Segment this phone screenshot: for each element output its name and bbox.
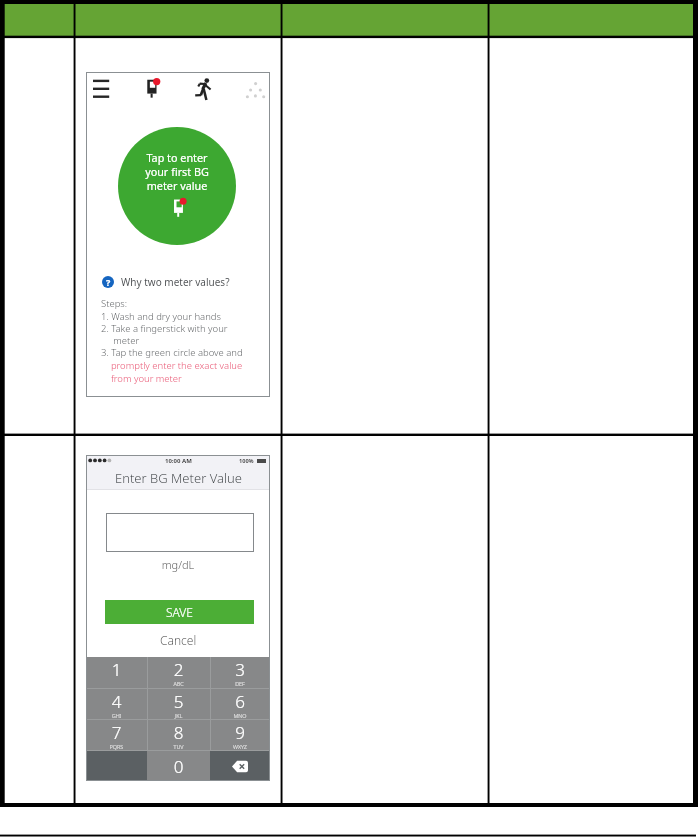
staticText: 0: [147, 755, 210, 778]
staticText: 100%: [239, 457, 254, 465]
staticText: SAVE: [166, 604, 193, 620]
button[interactable]: 3: [210, 657, 270, 688]
staticText: PQRS: [86, 743, 147, 750]
staticText: Steps: 1. Wash and dry your hands 2. Tak…: [101, 297, 243, 358]
button[interactable]: 6: [210, 689, 270, 719]
button[interactable]: 1: [86, 657, 147, 688]
button[interactable]: Activity: [191, 74, 219, 102]
button[interactable]: 0: [147, 751, 210, 781]
staticText: 5: [147, 690, 210, 713]
button[interactable]: 8: [147, 720, 210, 750]
staticText: 4: [86, 690, 147, 713]
button[interactable]: More: [239, 74, 267, 102]
staticText: Cancel: [160, 632, 197, 648]
staticText: mg/dL: [86, 557, 270, 572]
button[interactable]: 2: [147, 657, 210, 688]
button[interactable]: Cancel: [86, 632, 270, 648]
button[interactable]: 5: [147, 689, 210, 719]
staticText: WXYZ: [210, 743, 270, 750]
staticText: 3: [210, 658, 270, 681]
button[interactable]: Backspace: [210, 751, 270, 781]
staticText: DEF: [210, 680, 270, 687]
button[interactable]: Meter: [140, 74, 168, 102]
staticText: 10:00 AM: [165, 457, 192, 465]
staticText: 9: [210, 721, 270, 744]
button[interactable]: Menu: [89, 74, 117, 102]
button[interactable]: 4: [86, 689, 147, 719]
staticText: 7: [86, 721, 147, 744]
button[interactable]: SAVE: [105, 600, 254, 624]
staticText: TUV: [147, 743, 210, 750]
staticText: Enter BG Meter Value: [115, 469, 242, 487]
staticText: Why two meter values?: [121, 275, 230, 289]
button[interactable]: Blank: [86, 751, 147, 781]
staticText: ABC: [147, 680, 210, 687]
staticText: GHI: [86, 712, 147, 719]
staticText: 8: [147, 721, 210, 744]
staticText: JKL: [147, 712, 210, 719]
staticText: 1: [86, 658, 147, 681]
button[interactable]: 7: [86, 720, 147, 750]
staticText: promptly enter the exact value from your…: [101, 359, 243, 384]
staticText: 6: [210, 690, 270, 713]
staticText: MNO: [210, 712, 270, 719]
staticText: Tap to enter your first BG meter value: [118, 150, 236, 193]
staticText: ?: [106, 276, 111, 288]
staticText: 2: [147, 658, 210, 681]
button[interactable]: [106, 513, 254, 552]
button[interactable]: ?: [102, 274, 230, 290]
button[interactable]: Tap to enter your first BG meter value: [118, 127, 236, 245]
button[interactable]: 9: [210, 720, 270, 750]
